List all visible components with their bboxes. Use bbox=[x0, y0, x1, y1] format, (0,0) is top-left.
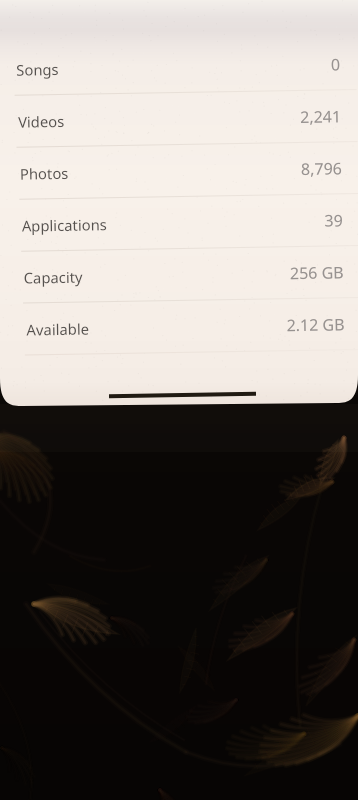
staticText: 2.12 GB bbox=[286, 313, 345, 336]
button[interactable]: Videos bbox=[0, 90, 357, 147]
button[interactable]: Available bbox=[2, 298, 358, 355]
staticText: 2,241 bbox=[300, 105, 341, 128]
other: Home indicator bbox=[109, 392, 256, 398]
button[interactable]: Applications bbox=[0, 194, 358, 251]
staticText: Applications bbox=[22, 214, 108, 236]
staticText: Capacity bbox=[23, 267, 83, 288]
staticText: 8,796 bbox=[301, 157, 342, 180]
button[interactable]: Songs bbox=[0, 38, 357, 95]
button[interactable]: Photos bbox=[0, 142, 358, 199]
staticText: Available bbox=[26, 318, 90, 339]
staticText: 39 bbox=[324, 209, 343, 232]
staticText: 0 bbox=[330, 53, 340, 75]
staticText: Videos bbox=[18, 111, 65, 132]
staticText: Photos bbox=[20, 163, 69, 184]
staticText: 256 GB bbox=[289, 261, 344, 284]
button[interactable]: Capacity bbox=[1, 246, 358, 303]
staticText: Songs bbox=[16, 59, 59, 80]
